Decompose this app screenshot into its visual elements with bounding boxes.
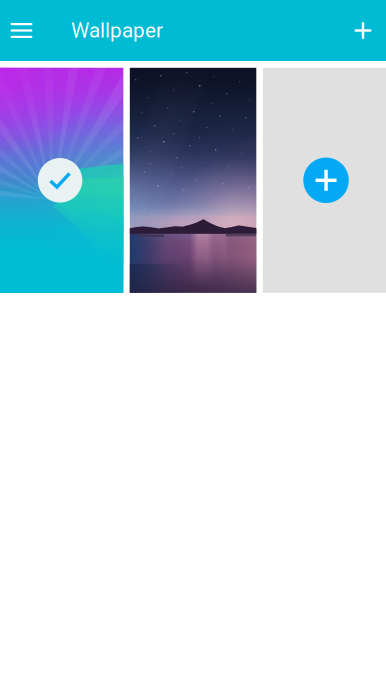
button[interactable]: Selected wallpaper bbox=[0, 68, 123, 293]
button[interactable]: Add wallpaper bbox=[263, 68, 386, 293]
button[interactable]: Wallpaper bbox=[43, 0, 163, 61]
button[interactable]: Menu bbox=[0, 0, 43, 61]
button[interactable]: Night sky wallpaper bbox=[130, 68, 256, 293]
staticText: Wallpaper bbox=[71, 18, 163, 43]
button[interactable]: Add wallpaper bbox=[340, 0, 386, 61]
